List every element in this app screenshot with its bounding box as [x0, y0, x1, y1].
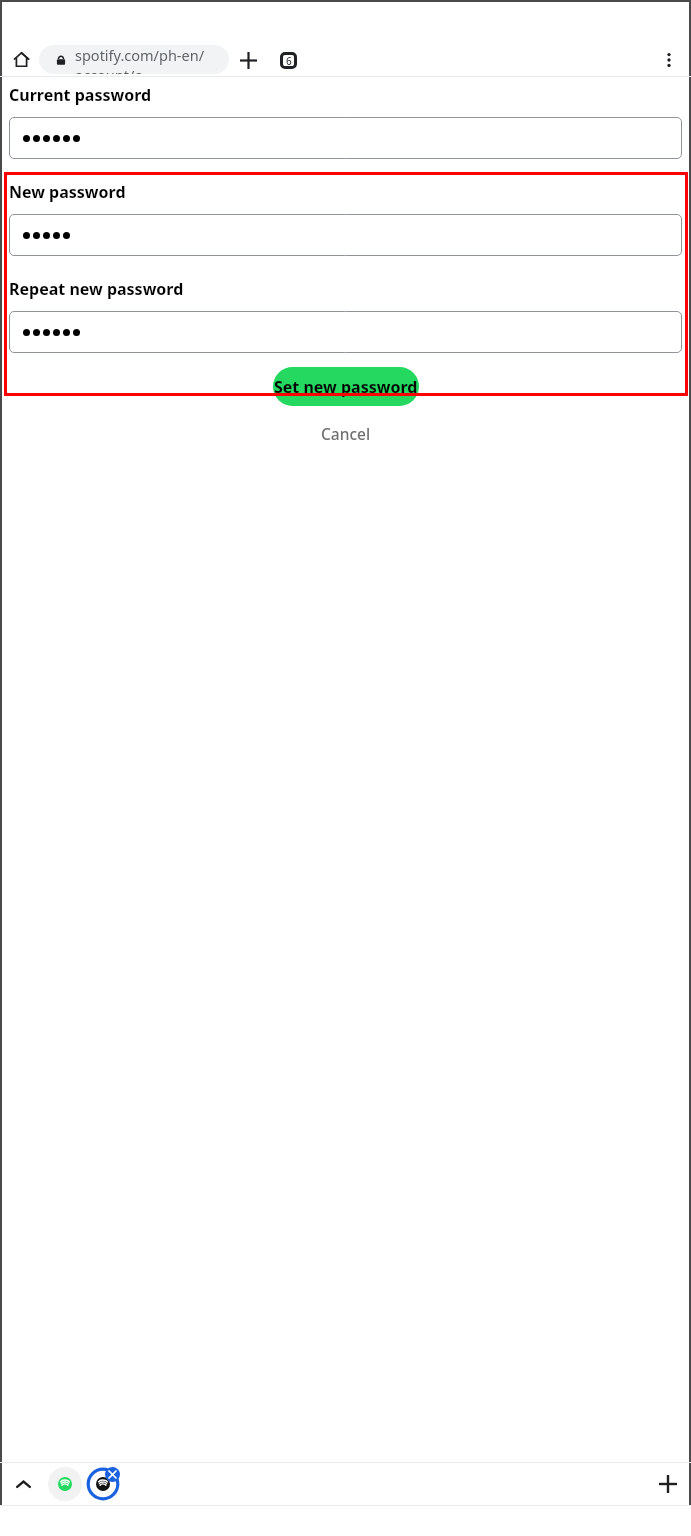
staticText: Cancel	[321, 423, 371, 444]
button[interactable]: Add	[651, 1467, 685, 1501]
button[interactable]: Expand	[6, 1467, 40, 1501]
button[interactable]	[9, 311, 682, 353]
staticText: Set new password	[274, 376, 418, 398]
staticText: Current password	[9, 84, 152, 106]
button[interactable]: Tabs	[272, 44, 304, 76]
button[interactable]	[9, 214, 682, 256]
button[interactable]: More options	[653, 44, 685, 76]
button[interactable]: Cancel	[311, 419, 381, 448]
button[interactable]: spotify.com/ph-en/account/c	[39, 45, 229, 74]
button[interactable]: New tab	[232, 44, 264, 76]
staticText: New password	[9, 181, 126, 203]
staticText: spotify.com/ph-en/account/c	[75, 45, 229, 74]
button[interactable]	[9, 117, 682, 159]
button[interactable]: Home	[5, 43, 38, 76]
staticText: Repeat new password	[9, 278, 184, 300]
button[interactable]: Close Spotify tab	[86, 1467, 120, 1501]
button[interactable]: Set new password	[273, 367, 419, 406]
button[interactable]: Spotify	[48, 1467, 82, 1501]
staticText: 6	[286, 54, 292, 68]
